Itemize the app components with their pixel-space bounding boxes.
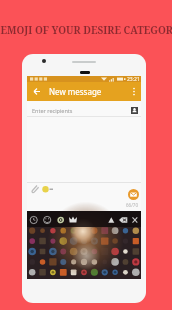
staticText: 66/70 xyxy=(126,202,138,208)
button[interactable]: More options xyxy=(127,82,141,101)
staticText: New message xyxy=(49,86,102,97)
button[interactable]: Send xyxy=(128,189,139,200)
staticText: EMOJI OF YOUR DESIRE CATEGORY xyxy=(0,23,172,37)
button[interactable]: Pick contact xyxy=(131,107,138,114)
staticText: Enter recipients xyxy=(32,107,73,114)
button[interactable]: Back xyxy=(29,82,45,101)
staticText: 23:21 xyxy=(127,76,140,82)
